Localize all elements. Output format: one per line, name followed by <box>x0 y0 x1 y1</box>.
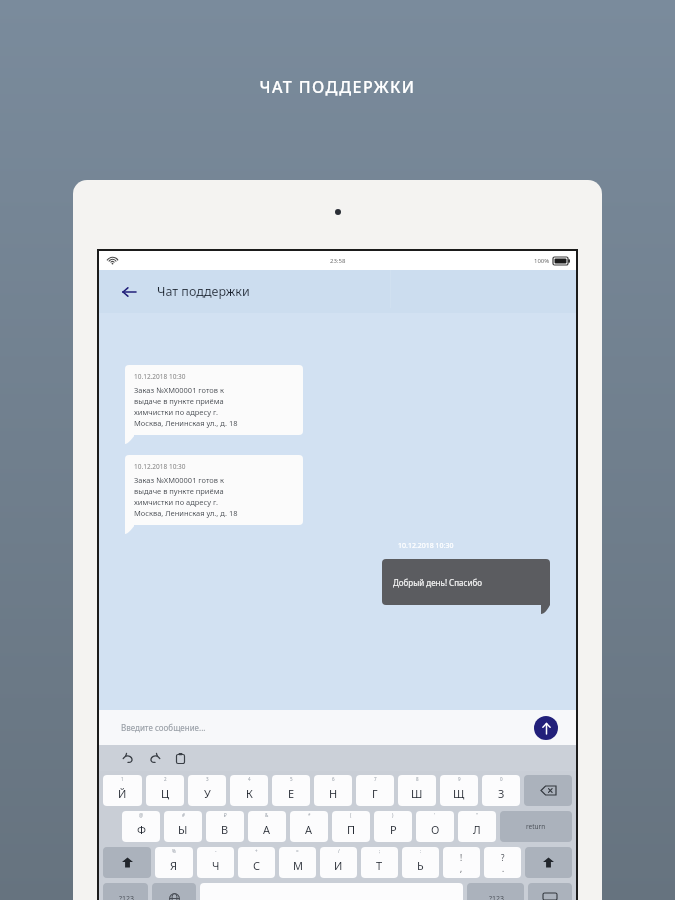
staticText: ( <box>350 812 352 818</box>
button[interactable]: % <box>155 847 193 878</box>
button[interactable]: + <box>238 847 275 878</box>
button[interactable]: ; <box>361 847 398 878</box>
staticText: 100% <box>534 257 550 265</box>
staticText: Л <box>473 822 481 837</box>
staticText: 10.12.2018 10:30 <box>134 372 186 381</box>
staticText: Р <box>390 822 397 837</box>
button[interactable]: Назад <box>117 280 141 304</box>
button[interactable]: ' <box>416 811 454 842</box>
staticText: 3 <box>206 776 209 782</box>
staticText: " <box>476 812 478 818</box>
staticText: 5 <box>290 776 293 782</box>
button[interactable]: * <box>290 811 328 842</box>
staticText: В <box>221 822 229 837</box>
button[interactable]: ? <box>484 847 521 878</box>
button[interactable]: 3 <box>188 775 226 806</box>
button[interactable]: 10.12.2018 10:30 <box>125 365 303 435</box>
staticText: % <box>172 848 176 854</box>
button[interactable]: Эмодзи <box>152 883 196 900</box>
button[interactable]: 1 <box>103 775 142 806</box>
staticText: О <box>431 822 440 837</box>
button[interactable]: : <box>402 847 439 878</box>
staticText: ) <box>392 812 394 818</box>
staticText: Т <box>376 858 383 873</box>
staticText: Добрый день! Спасибо <box>393 577 482 588</box>
staticText: @ <box>139 812 144 818</box>
button[interactable]: @ <box>122 811 160 842</box>
button[interactable]: .?123 <box>103 883 148 900</box>
button[interactable]: Отправить <box>534 716 558 740</box>
button[interactable]: 4 <box>230 775 268 806</box>
button[interactable]: 8 <box>398 775 436 806</box>
staticText: 9 <box>458 776 461 782</box>
staticText: Я <box>170 858 178 873</box>
button[interactable]: / <box>320 847 357 878</box>
staticText: У <box>204 786 211 801</box>
button[interactable]: Отменить <box>119 749 137 767</box>
button[interactable]: Shift <box>525 847 572 878</box>
staticText: + <box>255 848 258 854</box>
button[interactable]: Введите сообщение... <box>99 710 576 745</box>
staticText: Г <box>372 786 378 801</box>
staticText: ! <box>460 852 463 863</box>
staticText: 7 <box>374 776 377 782</box>
button[interactable]: Добрый день! Спасибо <box>382 559 550 605</box>
staticText: Чат поддержки <box>157 283 250 300</box>
staticText: .?123 <box>487 894 504 900</box>
staticText: С <box>253 858 261 873</box>
button[interactable]: 2 <box>146 775 184 806</box>
staticText: . <box>502 863 505 874</box>
staticText: 10.12.2018 10:30 <box>134 462 186 471</box>
button[interactable]: 9 <box>440 775 478 806</box>
button[interactable]: ! <box>443 847 480 878</box>
button[interactable]: .?123 <box>467 883 524 900</box>
staticText: 2 <box>164 776 167 782</box>
staticText: Щ <box>453 786 465 801</box>
staticText: Заказ №ХМ00001 готов к выдаче в пункте п… <box>134 385 238 428</box>
staticText: Ф <box>137 822 146 837</box>
button[interactable]: Вставить <box>171 749 189 767</box>
staticText: / <box>338 848 340 854</box>
button[interactable]: return <box>500 811 572 842</box>
button[interactable]: Shift <box>103 847 151 878</box>
button[interactable]: 6 <box>314 775 352 806</box>
staticText: Н <box>329 786 338 801</box>
button[interactable]: 0 <box>482 775 520 806</box>
staticText: return <box>526 822 546 831</box>
staticText: Ш <box>411 786 423 801</box>
staticText: 0 <box>500 776 503 782</box>
button[interactable]: " <box>458 811 496 842</box>
staticText: = <box>296 848 299 854</box>
staticText: 10.12.2018 10:30 <box>398 541 454 551</box>
staticText: 4 <box>248 776 251 782</box>
button[interactable]: = <box>279 847 316 878</box>
button[interactable]: # <box>164 811 202 842</box>
button[interactable]: 10.12.2018 10:30 <box>125 455 303 525</box>
button[interactable]: - <box>197 847 234 878</box>
staticText: П <box>347 822 356 837</box>
staticText: М <box>293 858 303 873</box>
staticText: Ч <box>212 858 220 873</box>
button[interactable]: Повторить <box>145 749 163 767</box>
staticText: : <box>420 848 422 854</box>
staticText: ₽ <box>224 812 227 818</box>
staticText: Й <box>118 786 127 801</box>
button[interactable]: & <box>248 811 286 842</box>
button[interactable]: Удалить <box>524 775 572 806</box>
button[interactable]: 5 <box>272 775 310 806</box>
button[interactable]: ( <box>332 811 370 842</box>
button[interactable]: ₽ <box>206 811 244 842</box>
button[interactable]: 7 <box>356 775 394 806</box>
staticText: 8 <box>416 776 419 782</box>
staticText: 6 <box>332 776 335 782</box>
button[interactable]: ) <box>374 811 412 842</box>
staticText: З <box>498 786 505 801</box>
staticText: ? <box>501 852 505 863</box>
staticText: Е <box>288 786 295 801</box>
staticText: Заказ №ХМ00001 готов к выдаче в пункте п… <box>134 475 238 518</box>
staticText: 23:58 <box>330 257 346 265</box>
staticText: ЧАТ ПОДДЕРЖКИ <box>0 76 675 98</box>
button[interactable]: Скрыть клавиатуру <box>528 883 572 900</box>
staticText: Ы <box>178 822 188 837</box>
